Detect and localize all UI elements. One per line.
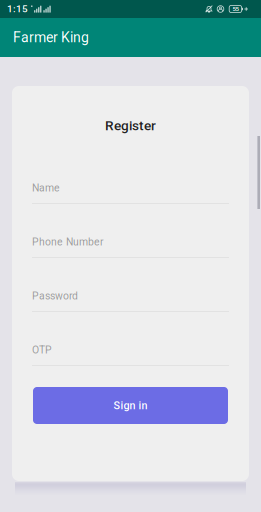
staticText: 1:15 (7, 3, 28, 15)
button[interactable]: Sign in (33, 387, 228, 424)
staticText: Phone Number (32, 236, 104, 248)
staticText: Register (105, 117, 156, 133)
staticText: OTP (32, 344, 52, 356)
staticText: Name (32, 182, 60, 194)
staticText: Password (32, 290, 78, 302)
staticText: Sign in (113, 399, 147, 412)
staticText: Farmer King (13, 29, 89, 46)
staticText: 55 (232, 5, 238, 13)
